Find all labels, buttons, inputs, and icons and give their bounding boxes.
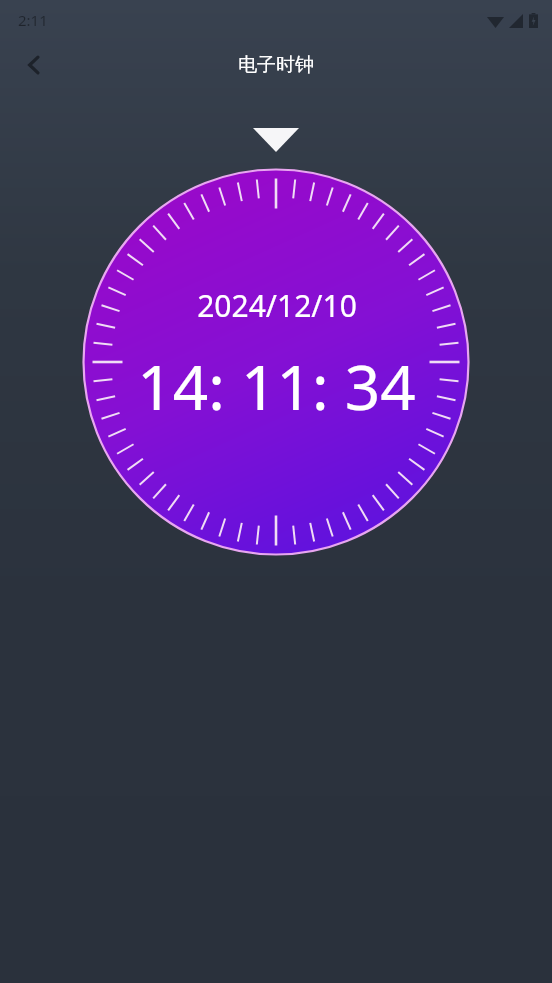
staticText: 电子时钟 [238,53,314,77]
staticText: 2:11 [18,10,48,30]
staticText: 14: 11: 34 [137,344,416,428]
staticText: 2024/12/10 [197,285,357,326]
button[interactable]: Clock dial [82,168,470,556]
button[interactable]: Back [10,41,58,89]
